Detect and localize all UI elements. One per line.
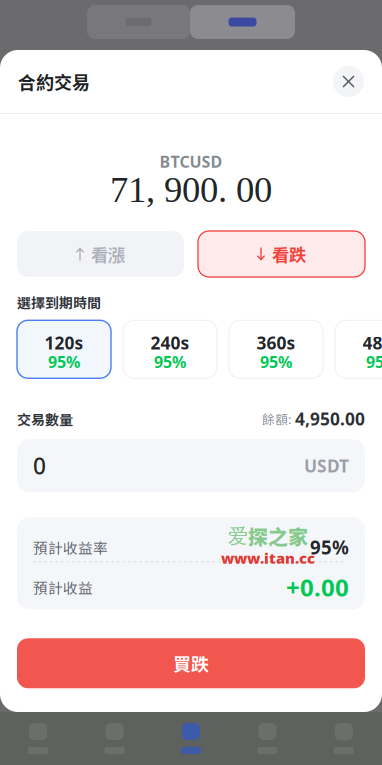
staticText: 預計收益: [33, 577, 93, 598]
button[interactable]: 120s: [17, 320, 111, 378]
button[interactable]: Tab: [229, 712, 306, 765]
button[interactable]: 480s: [335, 320, 382, 378]
staticText: 餘額:: [262, 410, 292, 428]
staticText: 買跌: [173, 650, 209, 676]
staticText: 120s: [44, 331, 83, 354]
button[interactable]: 買跌: [17, 638, 365, 688]
button[interactable]: 看漲: [17, 231, 184, 277]
button[interactable]: 看跌: [198, 231, 365, 277]
button[interactable]: 240s: [123, 320, 217, 378]
button[interactable]: Tab: [306, 712, 382, 765]
staticText: BTCUSD: [159, 151, 222, 172]
staticText: 4,950.00: [295, 407, 365, 430]
staticText: 預計收益率: [33, 537, 108, 558]
staticText: 0: [33, 451, 46, 481]
button[interactable]: Tab: [76, 712, 153, 765]
button[interactable]: 360s: [229, 320, 323, 378]
staticText: 480s: [362, 331, 382, 354]
staticText: www.itan.cc: [221, 548, 315, 568]
staticText: 240s: [150, 331, 189, 354]
staticText: 交易數量: [17, 409, 73, 429]
staticText: 選擇到期時間: [17, 292, 101, 312]
staticText: 95%: [48, 351, 80, 372]
staticText: 95%: [366, 351, 382, 372]
staticText: 看跌: [272, 241, 306, 267]
staticText: USDT: [304, 454, 349, 477]
button[interactable]: Tab: [0, 712, 76, 765]
staticText: 看漲: [91, 241, 125, 267]
staticText: 95%: [260, 351, 292, 372]
staticText: 95%: [310, 535, 349, 560]
staticText: 95%: [154, 351, 186, 372]
staticText: 合約交易: [18, 68, 90, 95]
button[interactable]: Tab: [153, 712, 229, 765]
staticText: 360s: [256, 331, 295, 354]
staticText: 71, 900. 00: [110, 169, 272, 210]
button[interactable]: Close: [333, 66, 364, 97]
staticText: +0.00: [286, 571, 349, 603]
staticText: 爱探之家: [228, 521, 308, 550]
